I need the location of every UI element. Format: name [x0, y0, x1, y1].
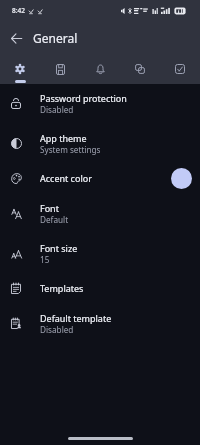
- staticText: 15: [40, 254, 50, 265]
- button[interactable]: Templates: [0, 273, 200, 303]
- staticText: Password protection: [40, 92, 127, 104]
- button[interactable]: Font: [0, 193, 200, 233]
- staticText: General: [33, 30, 78, 46]
- button[interactable]: Notifications: [80, 54, 120, 84]
- staticText: Default template: [40, 312, 112, 324]
- staticText: Font size: [40, 242, 78, 254]
- button[interactable]: Font size: [0, 233, 200, 273]
- button[interactable]: Duplicate: [120, 54, 160, 84]
- staticText: Disabled: [40, 324, 74, 335]
- staticText: Default: [40, 214, 69, 225]
- button[interactable]: Save: [40, 54, 80, 84]
- button[interactable]: Settings: [0, 54, 40, 84]
- staticText: Disabled: [40, 104, 74, 115]
- staticText: Templates: [40, 282, 84, 294]
- staticText: App theme: [40, 132, 87, 144]
- button[interactable]: App theme: [0, 123, 200, 163]
- staticText: System settings: [40, 144, 101, 155]
- button[interactable]: Default template: [0, 303, 200, 343]
- button[interactable]: Password protection: [0, 83, 200, 123]
- staticText: Accent color: [40, 172, 92, 184]
- staticText: 8:42: [12, 6, 25, 15]
- button[interactable]: Tasks: [160, 54, 200, 84]
- staticText: Font: [40, 202, 59, 214]
- button[interactable]: Accent color: [0, 163, 200, 193]
- button[interactable]: Navigate up: [4, 26, 28, 50]
